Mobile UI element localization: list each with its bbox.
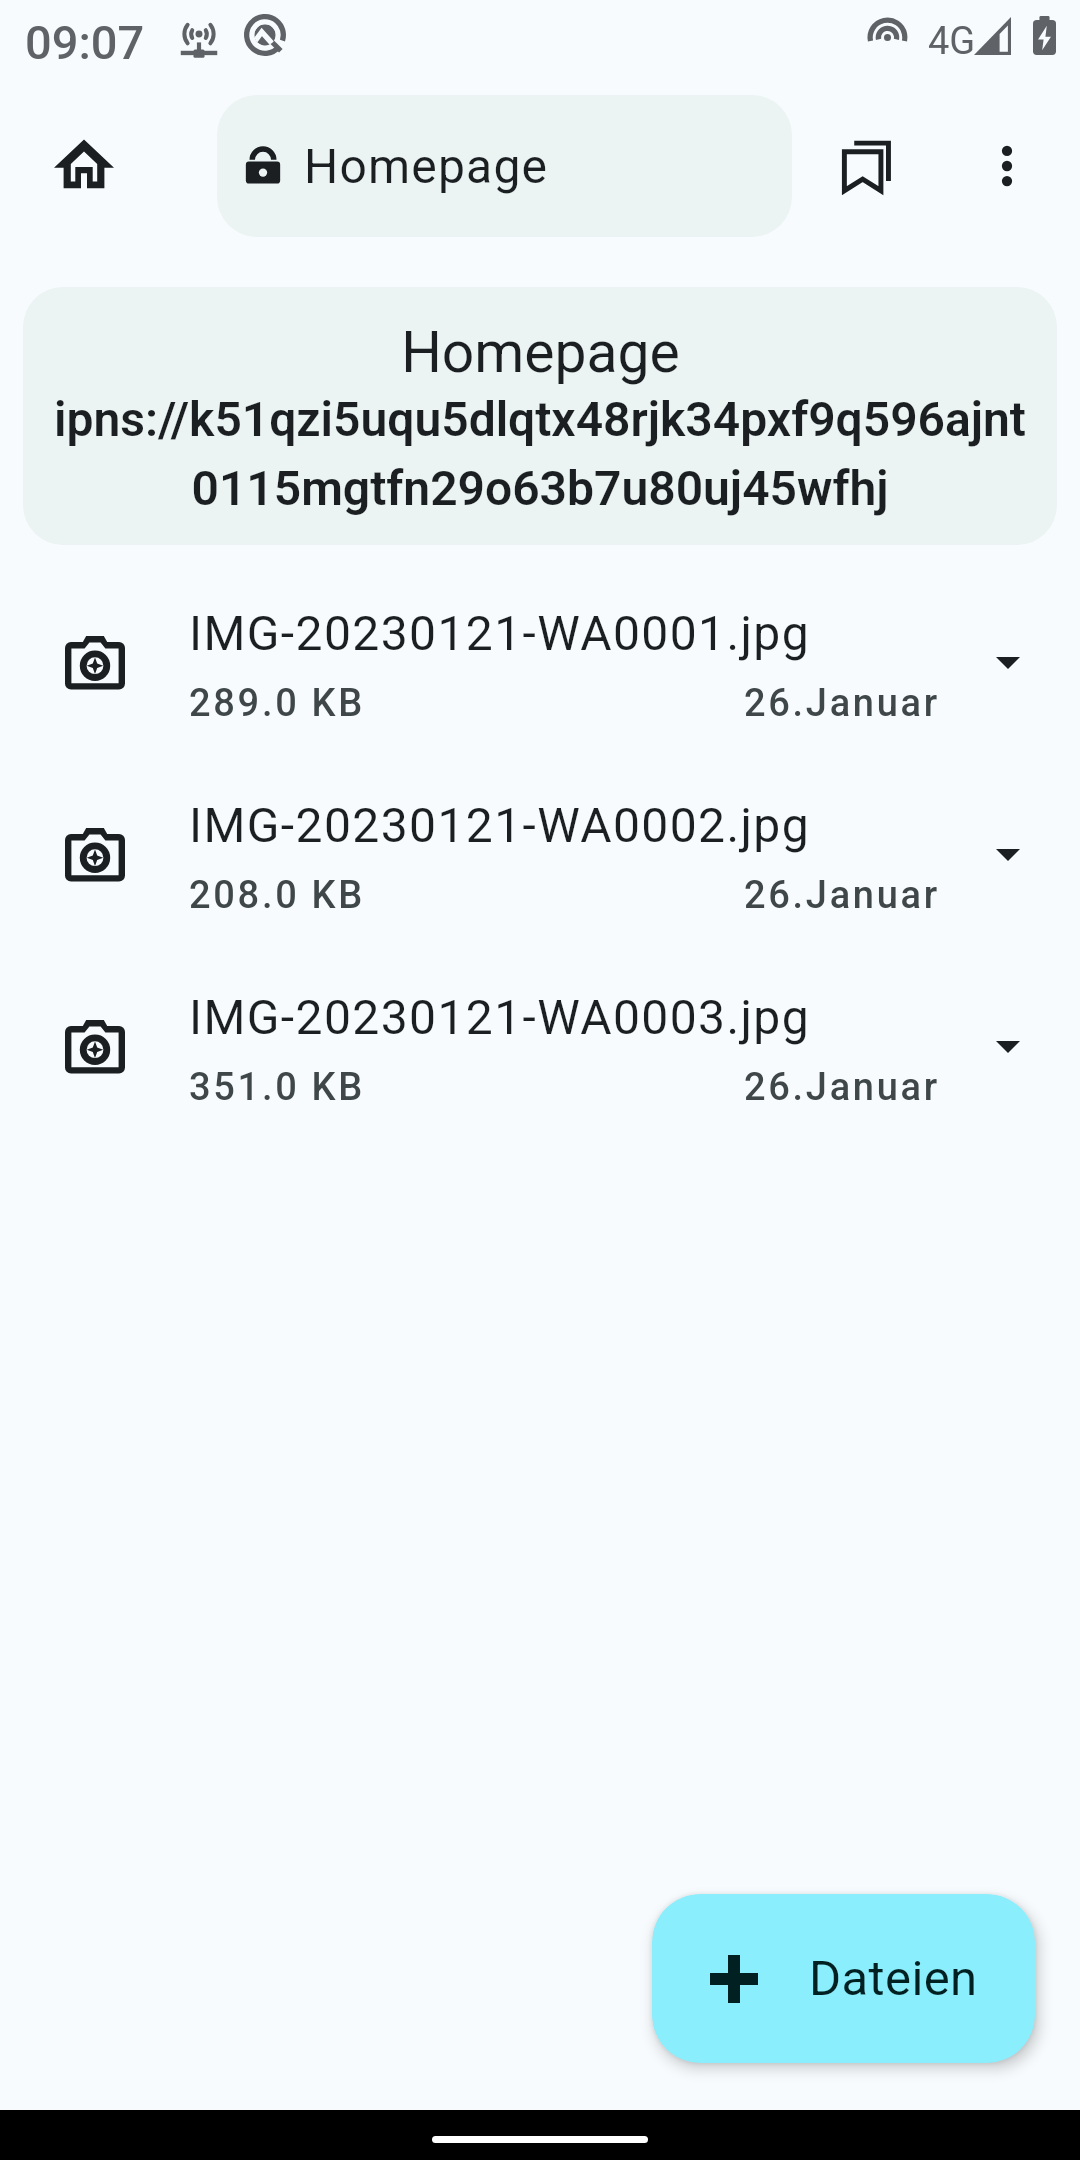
staticText: 289.0 KB bbox=[189, 681, 365, 726]
staticText: 26.Januar bbox=[744, 1065, 940, 1110]
staticText: 26.Januar bbox=[744, 681, 940, 726]
button[interactable]: IMG-20230121-WA0001.jpg bbox=[0, 567, 1080, 759]
button[interactable]: More options bbox=[947, 106, 1067, 226]
staticText: 09:07 bbox=[25, 15, 145, 70]
staticText: 351.0 KB bbox=[189, 1065, 365, 1110]
button[interactable]: Dateien bbox=[652, 1894, 1035, 2063]
staticText: Homepage bbox=[304, 138, 549, 194]
button[interactable]: Home bbox=[14, 96, 154, 236]
button[interactable]: Homepage bbox=[23, 287, 1057, 545]
staticText: Homepage bbox=[401, 319, 680, 386]
staticText: IMG-20230121-WA0001.jpg bbox=[189, 605, 811, 661]
staticText: IMG-20230121-WA0003.jpg bbox=[189, 989, 811, 1045]
staticText: ipns://k51qzi5uqu5dlqtx48rjk34pxf9q596aj… bbox=[51, 391, 1029, 517]
staticText: 4G bbox=[928, 19, 976, 64]
staticText: Dateien bbox=[809, 1950, 978, 2007]
button[interactable]: IMG-20230121-WA0003.jpg bbox=[0, 951, 1080, 1143]
button[interactable]: Homepage bbox=[217, 95, 792, 237]
button[interactable]: Expand bbox=[944, 787, 1072, 923]
button[interactable]: Expand bbox=[944, 595, 1072, 731]
staticText: 26.Januar bbox=[744, 873, 940, 918]
button[interactable]: Bookmarks bbox=[807, 106, 927, 226]
staticText: IMG-20230121-WA0002.jpg bbox=[189, 797, 811, 853]
button[interactable]: Expand bbox=[944, 979, 1072, 1115]
staticText: 208.0 KB bbox=[189, 873, 365, 918]
button[interactable]: IMG-20230121-WA0002.jpg bbox=[0, 759, 1080, 951]
